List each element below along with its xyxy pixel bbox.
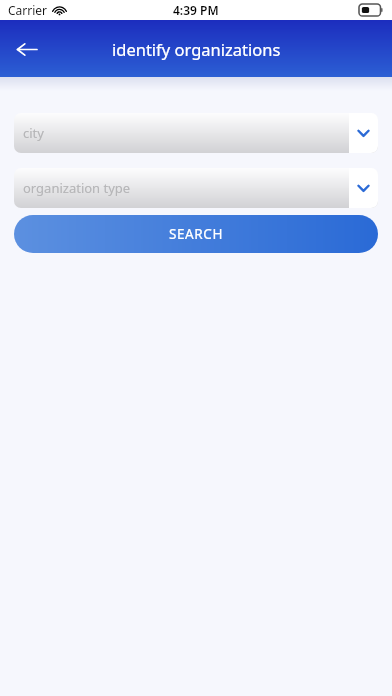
staticText: identify organizations <box>112 38 281 60</box>
staticText: 4:39 PM <box>173 2 219 18</box>
button[interactable]: SEARCH <box>14 215 378 253</box>
staticText: SEARCH <box>169 225 224 243</box>
button[interactable]: organization type <box>14 168 378 208</box>
button[interactable]: city <box>14 113 378 153</box>
staticText: organization type <box>23 179 131 197</box>
staticText: Carrier <box>8 2 48 18</box>
button[interactable]: Back <box>6 29 46 69</box>
staticText: city <box>23 124 44 142</box>
